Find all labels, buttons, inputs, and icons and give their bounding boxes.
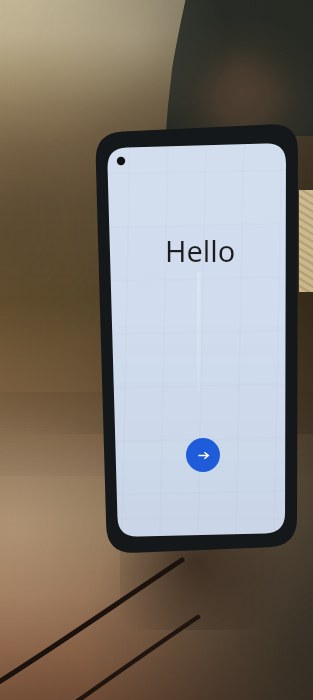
button[interactable]: Next (186, 438, 220, 472)
staticText: Hello (165, 231, 236, 270)
